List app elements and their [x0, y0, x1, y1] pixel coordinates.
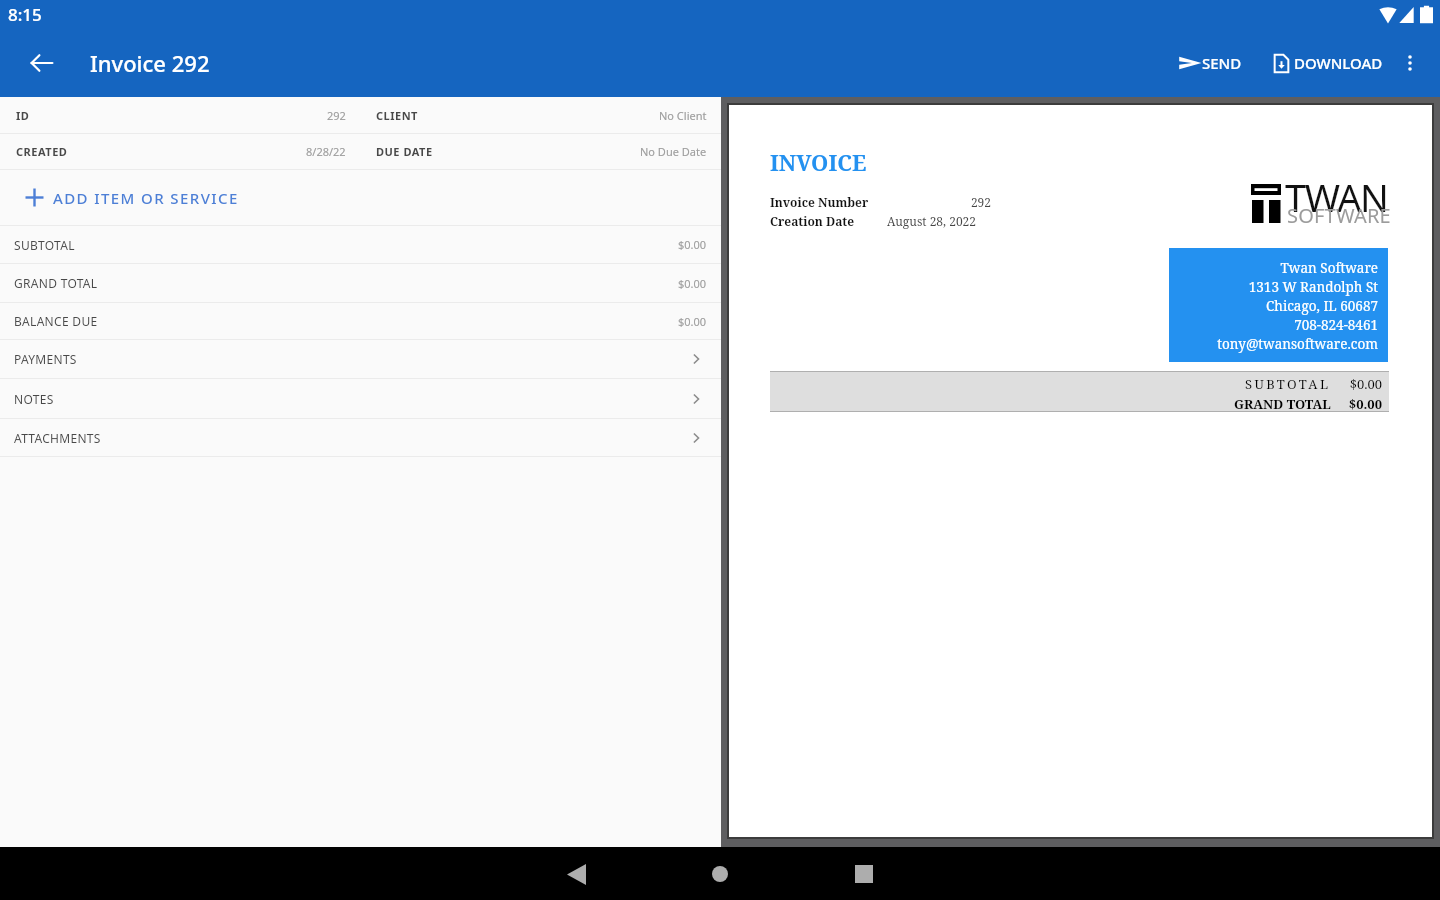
button[interactable]: BALANCE DUE — [0, 303, 721, 339]
staticText: tony@twansoftware.com — [1217, 335, 1378, 353]
staticText: ADD ITEM OR SERVICE — [53, 188, 239, 208]
staticText: NOTES — [14, 391, 54, 407]
button[interactable]: More options — [1388, 41, 1432, 85]
staticText: CREATED — [16, 144, 68, 159]
button[interactable]: Home — [696, 850, 744, 898]
staticText: SUBTOTAL — [1245, 375, 1331, 393]
staticText: $0.00 — [1342, 395, 1382, 411]
staticText: PAYMENTS — [14, 351, 77, 367]
button[interactable]: SEND — [1173, 41, 1247, 85]
staticText: No Due Date — [640, 144, 707, 159]
staticText: August 28, 2022 — [855, 213, 976, 229]
staticText: GRAND TOTAL — [1234, 395, 1331, 411]
button[interactable]: CREATED — [0, 134, 360, 169]
staticText: CLIENT — [376, 108, 418, 123]
staticText: 8/28/22 — [306, 144, 346, 159]
staticText: Chicago, IL 60687 — [1266, 297, 1378, 315]
staticText: 708-824-8461 — [1294, 316, 1378, 334]
button[interactable]: GRAND TOTAL — [0, 264, 721, 302]
staticText: ATTACHMENTS — [14, 430, 101, 446]
staticText: INVOICE — [770, 147, 867, 177]
staticText: $0.00 — [678, 276, 707, 291]
staticText: Invoice 292 — [90, 48, 210, 78]
staticText: Twan Software — [1280, 259, 1378, 277]
button[interactable]: ADD ITEM OR SERVICE — [0, 170, 721, 225]
staticText: SOFTWARE — [1287, 202, 1391, 229]
button[interactable]: CLIENT — [360, 97, 721, 133]
staticText: $0.00 — [678, 237, 707, 252]
button[interactable]: DOWNLOAD — [1267, 43, 1388, 83]
staticText: 8:15 — [8, 3, 42, 26]
staticText: DUE DATE — [376, 144, 433, 159]
button[interactable]: ATTACHMENTS — [0, 419, 721, 456]
button[interactable]: Recent apps — [840, 850, 888, 898]
button[interactable]: DUE DATE — [360, 134, 721, 169]
staticText: No Client — [659, 108, 707, 123]
staticText: SUBTOTAL — [14, 237, 75, 253]
button[interactable]: SUBTOTAL — [0, 226, 721, 263]
staticText: $0.00 — [678, 314, 707, 329]
staticText: DOWNLOAD — [1294, 53, 1383, 73]
staticText: TWAN — [1285, 171, 1388, 217]
staticText: GRAND TOTAL — [14, 275, 98, 291]
staticText: Invoice Number — [770, 194, 869, 210]
button[interactable]: Back — [18, 39, 66, 87]
staticText: Creation Date — [770, 213, 855, 229]
staticText: $0.00 — [1342, 375, 1382, 393]
button[interactable]: PAYMENTS — [0, 340, 721, 378]
button[interactable]: NOTES — [0, 379, 721, 418]
staticText: ID — [16, 108, 30, 123]
button[interactable]: Back — [552, 850, 600, 898]
staticText: BALANCE DUE — [14, 313, 98, 329]
staticText: 1313 W Randolph St — [1248, 278, 1378, 296]
staticText: SEND — [1202, 53, 1242, 73]
staticText: 292 — [327, 108, 346, 123]
staticText: 292 — [869, 194, 991, 210]
button[interactable]: ID — [0, 97, 360, 133]
